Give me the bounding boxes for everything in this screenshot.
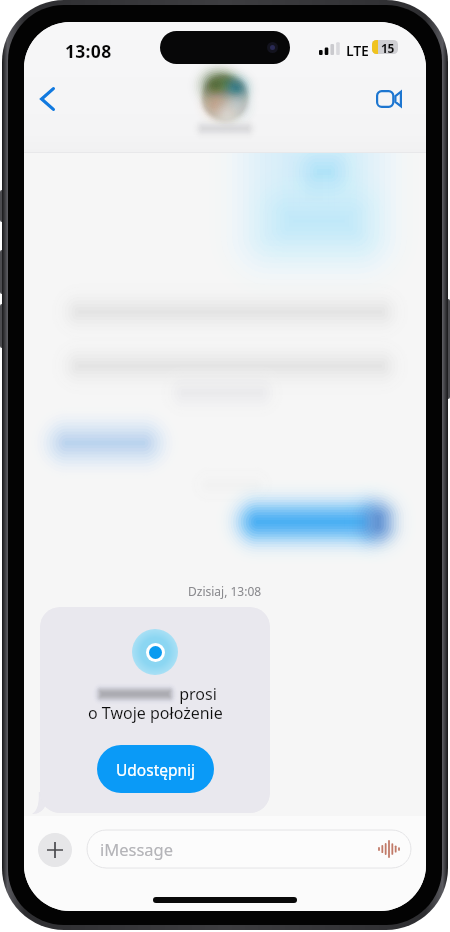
staticText: prosi [175,683,217,705]
staticText: Dzisiaj, 13:08 [188,583,262,599]
button[interactable]: Add attachment [38,833,72,867]
button[interactable]: iMessage [87,830,411,868]
staticText: LTE [346,41,369,60]
staticText: Udostępnij [116,759,196,780]
staticText: 13:08 [65,39,112,63]
button[interactable]: prosi [40,607,270,813]
button[interactable]: Back [27,79,67,119]
staticText: 15 [381,40,395,54]
button[interactable]: Udostępnij [97,745,214,793]
button[interactable]: FaceTime video call [369,79,409,119]
staticText: o Twoje położenie [88,702,223,724]
staticText: iMessage [100,838,174,860]
